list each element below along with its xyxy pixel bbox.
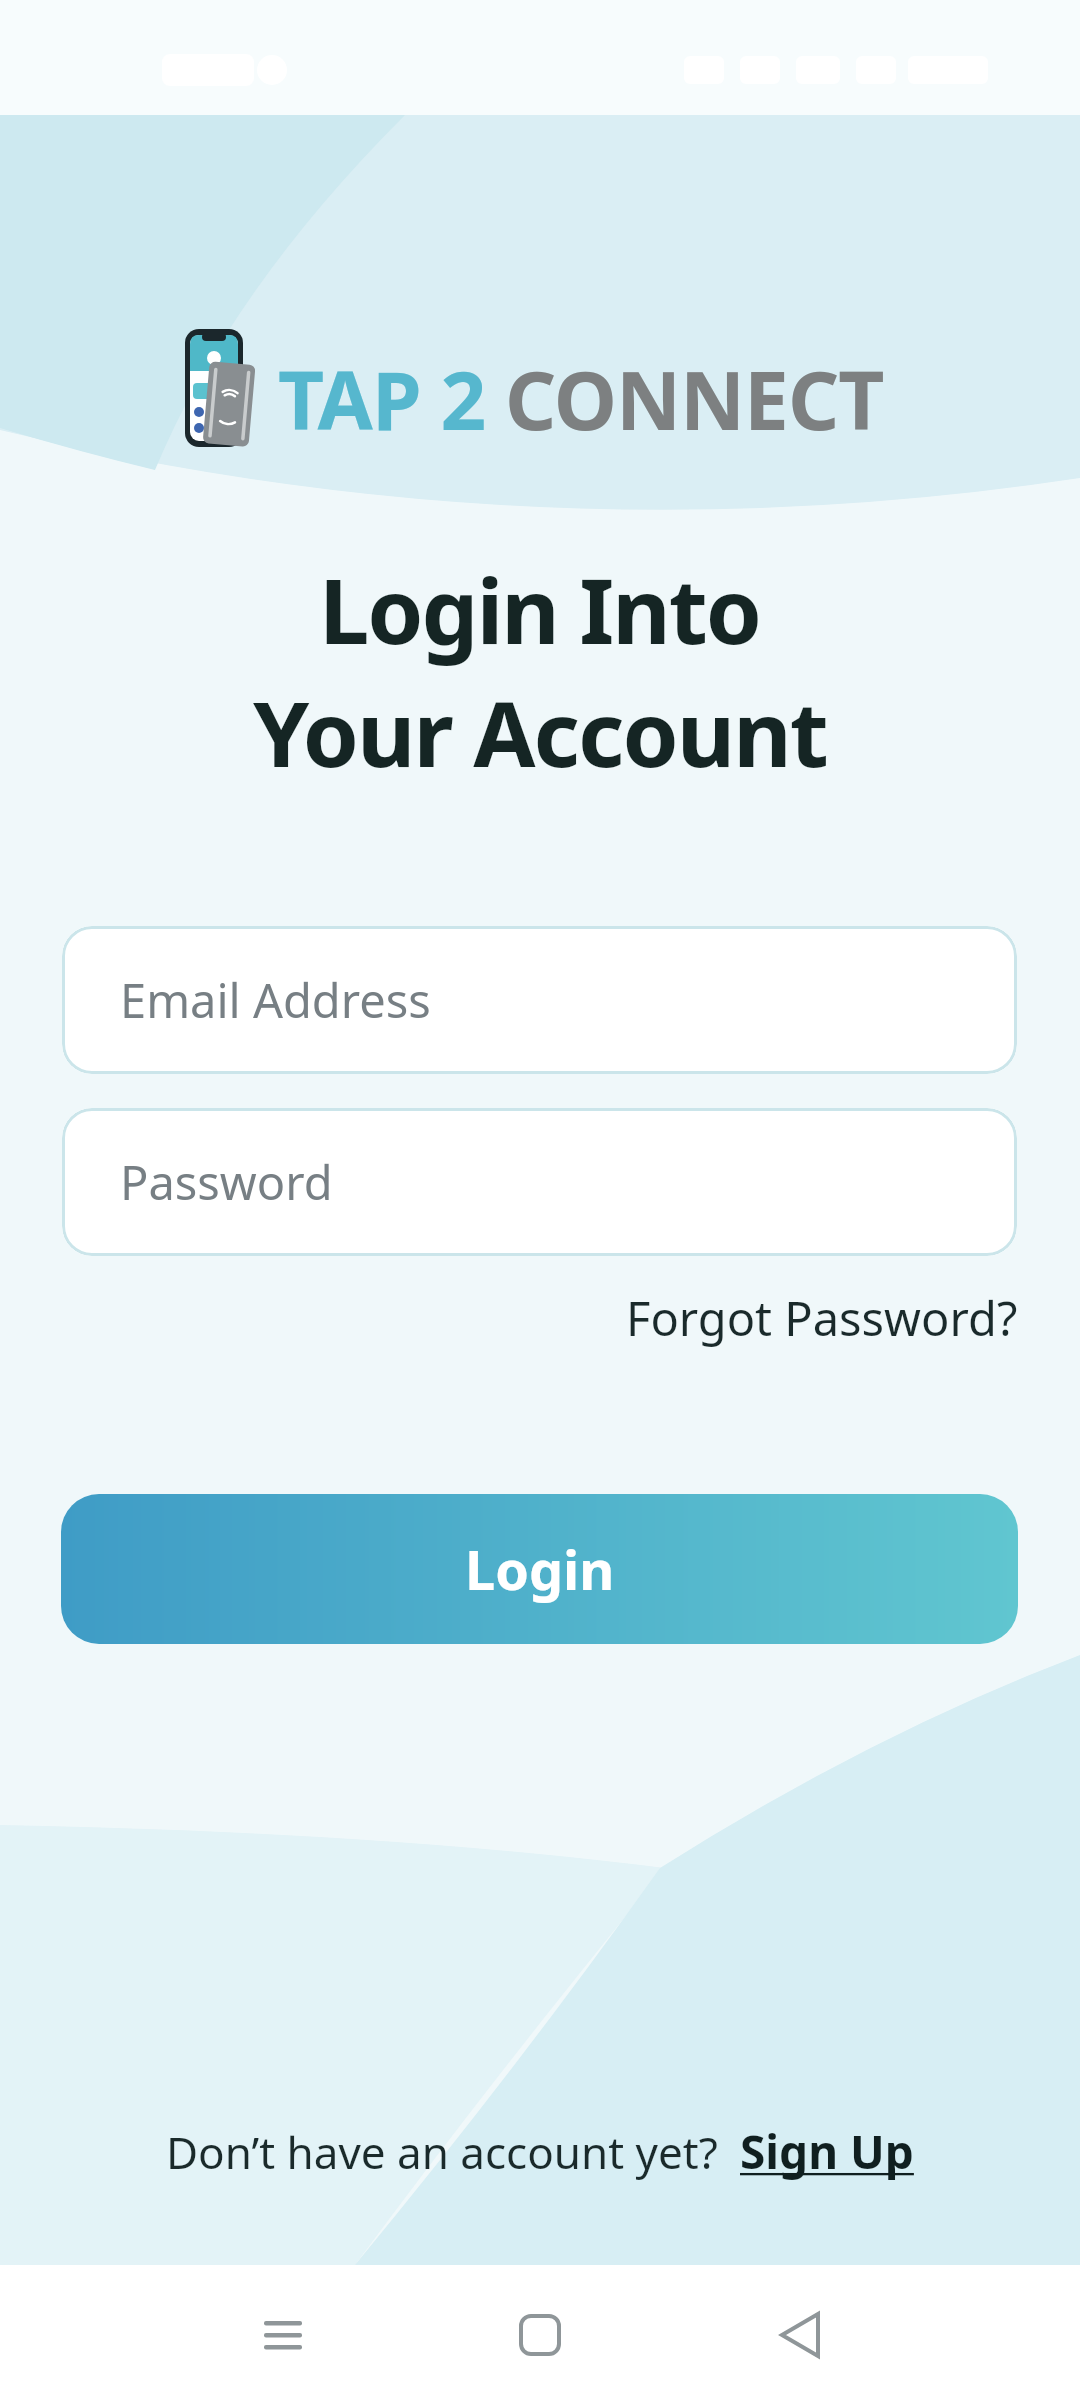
button[interactable]: Password <box>62 1108 1017 1256</box>
staticText: Sign Up <box>740 2120 914 2183</box>
staticText: Login <box>465 1532 615 1606</box>
button[interactable] <box>360 2265 720 2400</box>
button[interactable]: Sign Up <box>740 2120 914 2183</box>
staticText: Your Account <box>253 671 827 794</box>
button[interactable]: Forgot Password? <box>626 1286 1018 1350</box>
staticText: TAP 2 <box>278 344 505 453</box>
button[interactable] <box>720 2265 1080 2400</box>
button[interactable]: Login <box>61 1494 1018 1644</box>
staticText: Password <box>120 1150 333 1214</box>
staticText: CONNECT <box>505 344 884 453</box>
button[interactable] <box>0 2265 360 2400</box>
staticText: Login Into <box>319 548 761 671</box>
staticText: Email Address <box>120 968 431 1032</box>
staticText: Forgot Password? <box>626 1286 1018 1350</box>
staticText: Don’t have an account yet? <box>166 2122 718 2182</box>
button[interactable]: Email Address <box>62 926 1017 1074</box>
